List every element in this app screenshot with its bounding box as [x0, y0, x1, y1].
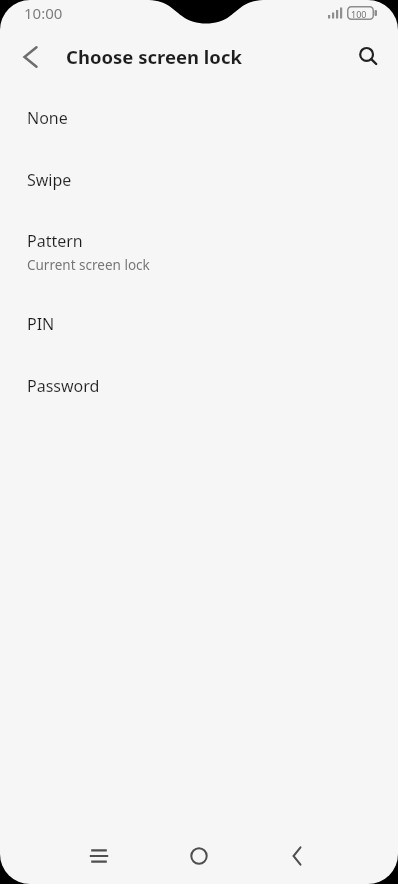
staticText: Current screen lock [27, 256, 150, 274]
staticText: Choose screen lock [66, 44, 242, 69]
staticText: Password [27, 375, 100, 397]
button[interactable] [175, 832, 223, 880]
staticText: PIN [27, 313, 55, 335]
button[interactable] [273, 832, 321, 880]
button[interactable]: Pattern [0, 211, 398, 293]
staticText: 10:00 [24, 3, 63, 23]
staticText: Swipe [27, 169, 72, 191]
button[interactable]: Password [0, 355, 398, 417]
button[interactable]: Swipe [0, 149, 398, 211]
button[interactable] [8, 35, 52, 79]
button[interactable] [347, 35, 391, 79]
staticText: Pattern [27, 230, 83, 252]
button[interactable]: None [0, 87, 398, 149]
button[interactable]: PIN [0, 293, 398, 355]
staticText: 100 [351, 8, 367, 20]
staticText: None [27, 107, 68, 129]
button[interactable] [75, 832, 123, 880]
